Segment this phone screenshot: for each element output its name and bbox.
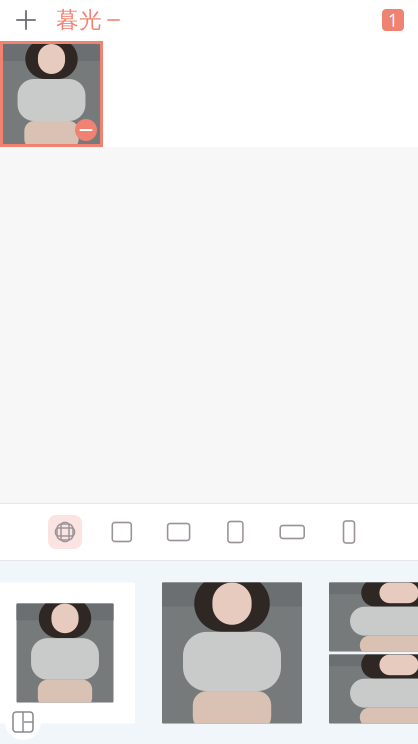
button[interactable]: Template 2 — [162, 582, 302, 723]
button[interactable]: 暮光 — [40, 0, 120, 41]
button[interactable]: Layouts — [5, 704, 41, 740]
button[interactable]: Selected photo — [0, 41, 103, 147]
button[interactable]: 4:3 — [162, 515, 196, 549]
staticText: 暮光 — [56, 6, 102, 34]
button[interactable]: Template 3 — [329, 582, 418, 723]
button[interactable]: 9:16 — [332, 515, 366, 549]
button[interactable]: 1 photo selected — [382, 9, 418, 31]
button[interactable]: Close — [0, 0, 40, 41]
button[interactable]: 16:9 — [275, 515, 309, 549]
button[interactable]: Free ratio — [48, 515, 82, 549]
staticText: 1 — [388, 8, 398, 31]
button[interactable]: Template 1 — [0, 582, 135, 723]
button[interactable]: 1:1 — [105, 515, 139, 549]
button[interactable]: 3:4 — [218, 515, 252, 549]
